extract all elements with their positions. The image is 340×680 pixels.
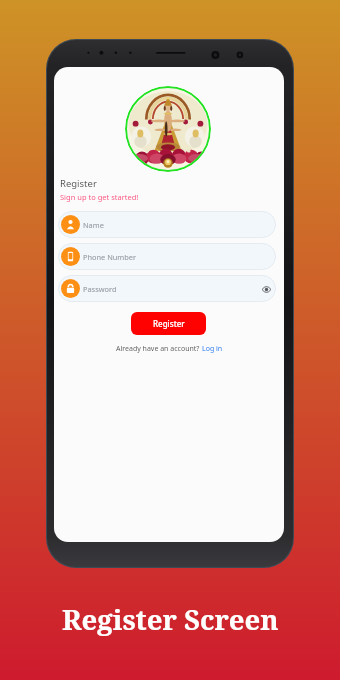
- button[interactable]: Phone Number: [58, 243, 276, 270]
- button[interactable]: Password: [58, 275, 276, 302]
- staticText: Register: [60, 177, 97, 190]
- button[interactable]: Log in: [202, 344, 223, 354]
- staticText: Sign up to get started!: [60, 192, 139, 202]
- staticText: Already have an account?: [116, 344, 202, 354]
- button[interactable]: Show password: [259, 282, 273, 296]
- button[interactable]: Register: [131, 312, 206, 335]
- staticText: Password: [83, 284, 117, 294]
- staticText: Register Screen: [62, 601, 279, 638]
- staticText: Phone Number: [83, 252, 137, 262]
- staticText: Name: [83, 220, 104, 230]
- button[interactable]: Name: [58, 211, 276, 238]
- staticText: Register: [153, 318, 185, 329]
